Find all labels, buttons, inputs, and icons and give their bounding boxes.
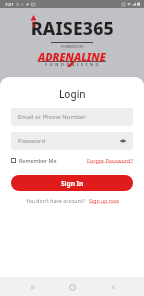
button[interactable]: Remember Me <box>11 157 57 164</box>
button[interactable]: Recent apps <box>23 278 41 296</box>
button[interactable]: Email or Phone Number <box>11 108 133 126</box>
staticText: ADRENALINE <box>38 50 106 65</box>
staticText: RAISE365 <box>31 16 114 40</box>
staticText: Remember Me <box>19 157 57 164</box>
staticText: Forgot Password? <box>87 157 133 164</box>
button[interactable]: Sign In <box>11 175 133 191</box>
button[interactable]: Sign up now <box>89 197 119 204</box>
staticText: Sign up now <box>89 197 119 204</box>
button[interactable]: Password <box>11 132 133 150</box>
other: Toggle password visibility <box>120 138 126 144</box>
staticText: 7:21 <box>5 1 14 7</box>
staticText: Sign In <box>61 179 84 188</box>
staticText: FUNDRAISING <box>45 62 101 67</box>
button[interactable]: Forgot Password? <box>87 157 133 164</box>
staticText: Password <box>18 137 46 145</box>
staticText: Login <box>59 87 86 101</box>
button[interactable]: Home <box>63 278 81 296</box>
button[interactable]: Back <box>104 278 122 296</box>
staticText: You don't have account? <box>26 197 85 204</box>
staticText: POWERED BY <box>61 44 84 49</box>
staticText: Email or Phone Number <box>18 113 86 121</box>
